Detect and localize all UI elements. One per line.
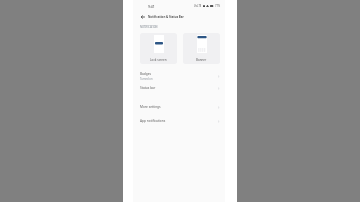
button[interactable]: Back	[140, 14, 145, 19]
staticText: More settings	[140, 105, 161, 109]
button[interactable]: Status bar	[123, 83, 237, 93]
staticText: VoLTE	[194, 4, 202, 8]
staticText: App notifications	[140, 119, 166, 123]
staticText: Lock screen	[150, 58, 167, 62]
staticText: Badges	[140, 72, 152, 76]
button[interactable]: Lock screen	[140, 33, 177, 64]
button[interactable]: Banner	[183, 33, 220, 64]
staticText: Status bar	[140, 86, 156, 90]
staticText: Notification & Status Bar	[148, 15, 184, 19]
staticText: NOTIFICATION	[140, 25, 158, 28]
button[interactable]: More settings	[123, 102, 237, 112]
staticText: 9:41	[148, 4, 155, 9]
staticText: Turned on	[140, 77, 153, 81]
button[interactable]: App notifications	[123, 116, 237, 126]
staticText: Banner	[196, 58, 207, 62]
button[interactable]: Badges	[123, 70, 237, 83]
staticText: 77%	[215, 4, 221, 8]
